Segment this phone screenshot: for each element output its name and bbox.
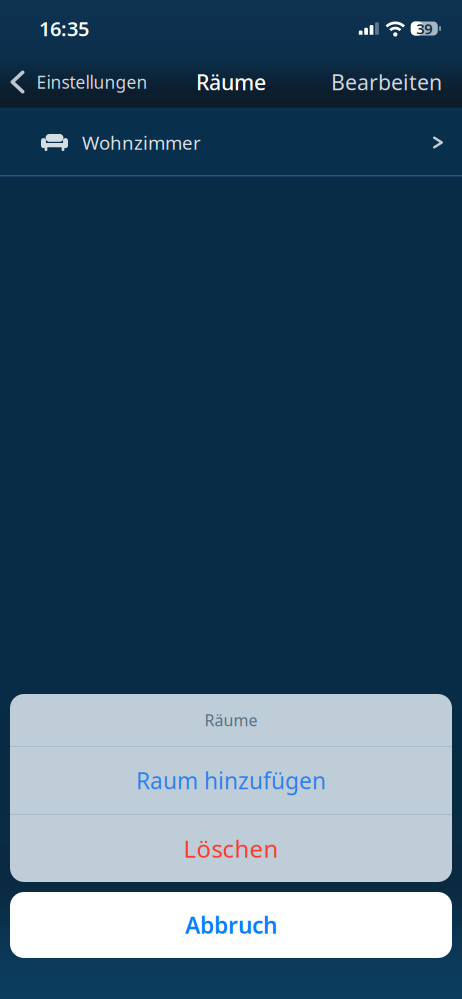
staticText: Wohnzimmer — [82, 130, 201, 155]
button[interactable]: Abbruch — [10, 892, 452, 958]
button[interactable]: Wohnzimmer — [0, 107, 462, 176]
staticText: Räume — [196, 68, 266, 96]
staticText: Räume — [204, 709, 257, 731]
button[interactable]: Einstellungen — [0, 62, 147, 101]
staticText: 39 — [416, 19, 432, 38]
staticText: Einstellungen — [36, 70, 147, 93]
button[interactable]: Löschen — [10, 815, 452, 882]
staticText: Bearbeiten — [331, 68, 442, 96]
staticText: Abbruch — [185, 910, 277, 940]
button[interactable]: Raum hinzufügen — [10, 747, 452, 814]
button[interactable]: Bearbeiten — [331, 60, 462, 104]
staticText: Raum hinzufügen — [136, 765, 326, 795]
staticText: Löschen — [183, 833, 278, 864]
staticText: 16:35 — [39, 15, 89, 42]
